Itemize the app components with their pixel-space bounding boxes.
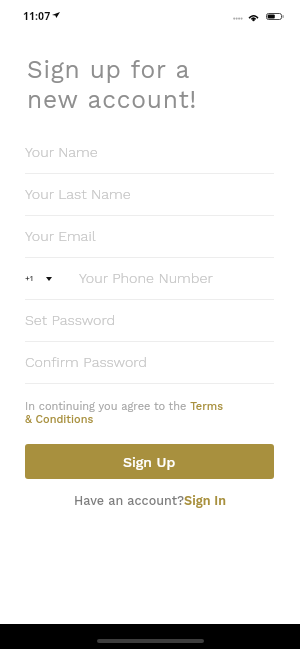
staticText: Sign up for a new account!	[27, 55, 197, 114]
staticText: Your Phone Number	[79, 270, 213, 287]
staticText: Your Email	[25, 228, 96, 245]
button[interactable]: Your Name	[25, 132, 274, 173]
button[interactable]: Your Email	[25, 216, 274, 257]
staticText: +1	[25, 274, 34, 283]
button[interactable]: Sign Up	[25, 444, 274, 479]
staticText: 11:07	[23, 9, 51, 23]
button[interactable]: Select country code	[25, 274, 56, 283]
staticText: Your Name	[25, 144, 98, 161]
button[interactable]: Confirm Password	[25, 342, 274, 383]
button[interactable]: Have an account?Sign In	[74, 493, 226, 508]
staticText: Confirm Password	[25, 354, 148, 371]
button[interactable]: In continuing you agree to the Terms & C…	[25, 400, 233, 426]
button[interactable]: Your Last Name	[25, 174, 274, 215]
button[interactable]: Set Password	[25, 300, 274, 341]
staticText: Sign Up	[123, 454, 176, 470]
staticText: Your Last Name	[25, 186, 131, 203]
staticText: Set Password	[25, 312, 116, 329]
